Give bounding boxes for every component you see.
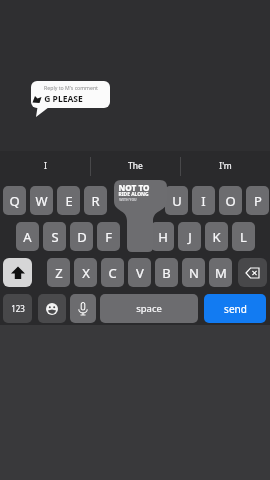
staticText: S — [51, 228, 59, 246]
button[interactable]: S — [43, 222, 66, 251]
button[interactable]: Reply to M's comment — [31, 81, 110, 108]
button[interactable]: Q — [3, 186, 26, 215]
button[interactable]: M — [209, 258, 232, 287]
staticText: J — [188, 228, 192, 246]
staticText: V — [136, 264, 144, 282]
staticText: O — [225, 192, 236, 210]
staticText: I — [44, 160, 47, 172]
staticText: X — [82, 264, 90, 282]
button[interactable]: space — [100, 294, 198, 323]
staticText: NOT TO — [118, 182, 150, 193]
button[interactable]: Z — [47, 258, 70, 287]
staticText: Q — [9, 192, 20, 210]
staticText: R — [91, 192, 100, 210]
staticText: Z — [55, 264, 63, 282]
button[interactable] — [3, 258, 32, 287]
button[interactable]: L — [232, 222, 255, 251]
staticText: D — [77, 228, 87, 246]
staticText: N — [189, 264, 199, 282]
button[interactable]: 123 — [3, 294, 32, 323]
button[interactable]: send — [204, 294, 266, 323]
button[interactable]: R — [84, 186, 107, 215]
staticText: U — [172, 192, 182, 210]
staticText: B — [162, 264, 171, 282]
button[interactable] — [238, 258, 267, 287]
button[interactable] — [70, 294, 96, 323]
staticText: H — [158, 228, 168, 246]
button[interactable]: P — [246, 186, 269, 215]
button[interactable]: N — [182, 258, 205, 287]
staticText: The — [128, 160, 143, 172]
staticText: C — [108, 264, 117, 282]
staticText: I — [201, 192, 206, 210]
staticText: E — [65, 192, 73, 210]
button[interactable]: I — [192, 186, 215, 215]
button[interactable]: B — [155, 258, 178, 287]
staticText: W — [35, 192, 48, 210]
staticText: M — [215, 264, 227, 282]
button[interactable]: V — [128, 258, 151, 287]
staticText: A — [23, 228, 32, 246]
button[interactable]: X — [74, 258, 97, 287]
staticText: space — [136, 302, 162, 315]
staticText: send — [224, 302, 247, 316]
button[interactable]: O — [219, 186, 242, 215]
staticText: I'm — [219, 160, 232, 172]
staticText: F — [105, 228, 112, 246]
button[interactable]: E — [57, 186, 80, 215]
button[interactable]: The — [90, 151, 180, 181]
button[interactable]: J — [178, 222, 201, 251]
button[interactable]: C — [101, 258, 124, 287]
button[interactable]: I'm — [180, 151, 270, 181]
staticText: RIDE ALONG — [118, 191, 149, 198]
button[interactable]: I — [0, 151, 90, 181]
staticText: L — [240, 228, 247, 246]
staticText: P — [254, 192, 262, 210]
button[interactable]: H — [151, 222, 174, 251]
button[interactable]: K — [205, 222, 228, 251]
button[interactable] — [38, 294, 66, 323]
button[interactable]: U — [165, 186, 188, 215]
staticText: Reply to M's comment — [44, 84, 98, 91]
staticText: G PLEASE — [44, 93, 83, 105]
button[interactable]: D — [70, 222, 93, 251]
staticText: K — [212, 228, 221, 246]
staticText: 123 — [11, 303, 25, 314]
button[interactable]: F — [97, 222, 120, 251]
staticText: WITH YOU — [119, 197, 137, 202]
button[interactable]: W — [30, 186, 53, 215]
button[interactable]: A — [16, 222, 39, 251]
